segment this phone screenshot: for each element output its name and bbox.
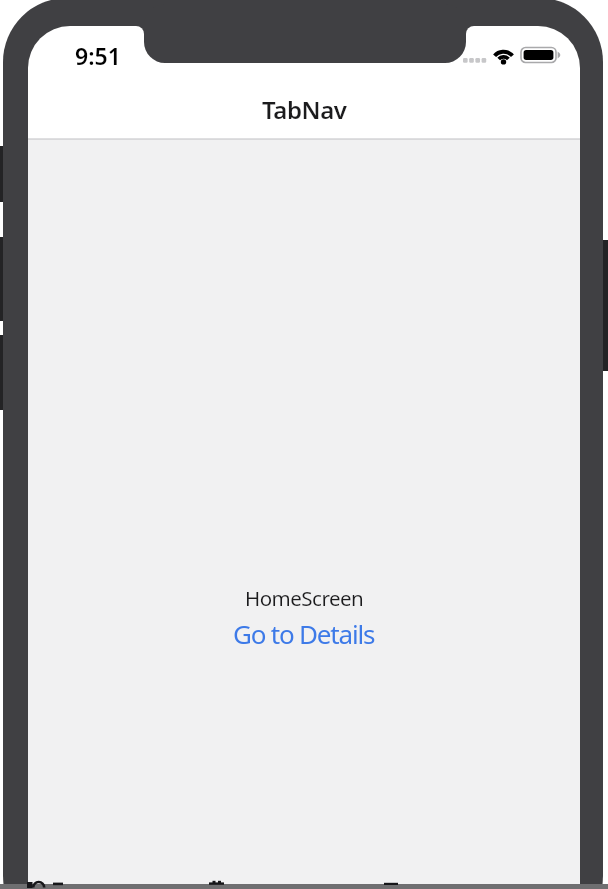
button[interactable]: Go to Details [214, 615, 394, 651]
staticText: Go to Details [233, 616, 375, 651]
staticText: HomeScreen [245, 584, 364, 612]
staticText: 9:51 [75, 40, 121, 71]
staticText: TabNav [262, 93, 347, 126]
